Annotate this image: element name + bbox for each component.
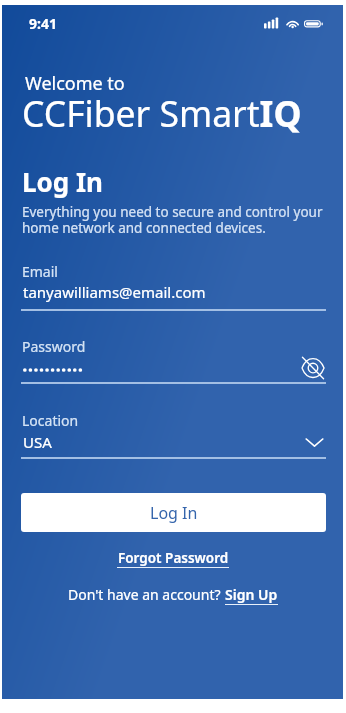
staticText: Log In bbox=[22, 164, 103, 199]
button[interactable]: Forgot Password bbox=[117, 549, 229, 568]
staticText: tanyawilliams@email.com bbox=[23, 282, 206, 302]
staticText: Welcome to bbox=[25, 71, 125, 96]
button[interactable]: Sign Up bbox=[225, 585, 278, 605]
staticText: Don't have an account? bbox=[68, 585, 225, 604]
button[interactable]: Show password bbox=[301, 356, 325, 380]
other: Battery bbox=[304, 19, 324, 29]
staticText: Email bbox=[22, 262, 58, 281]
button[interactable] bbox=[21, 334, 326, 385]
button[interactable] bbox=[21, 408, 326, 459]
other: Wi-Fi bbox=[286, 15, 300, 29]
staticText: 9:41 bbox=[29, 14, 57, 33]
staticText: Forgot Password bbox=[118, 549, 229, 567]
button[interactable] bbox=[21, 259, 326, 311]
staticText: Everything you need to secure and contro… bbox=[22, 203, 328, 237]
button[interactable]: Log In bbox=[21, 493, 326, 532]
button[interactable]: Select location bbox=[304, 432, 325, 453]
staticText: CCFiber SmartIQ bbox=[22, 89, 302, 137]
staticText: Location bbox=[22, 411, 79, 430]
staticText: Password bbox=[22, 337, 86, 356]
staticText: USA bbox=[23, 432, 52, 452]
staticText: Sign Up bbox=[225, 585, 278, 604]
staticText: Log In bbox=[150, 502, 198, 524]
other: Cellular signal bbox=[264, 15, 280, 29]
